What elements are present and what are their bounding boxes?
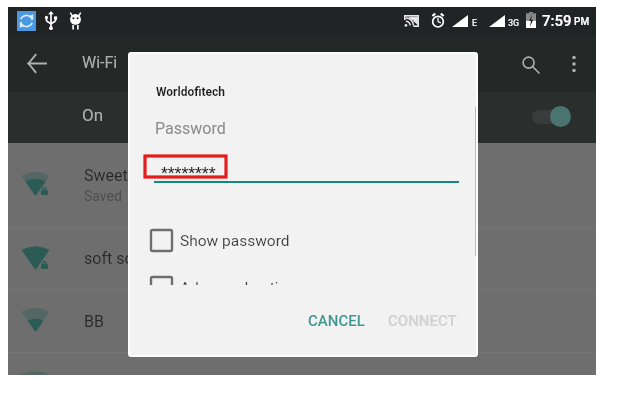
button[interactable]: CANCEL: [296, 303, 377, 339]
staticText: BB: [84, 312, 104, 331]
staticText: PM: [574, 16, 590, 28]
button[interactable]: More options: [556, 46, 592, 82]
staticText: Advanced options: [180, 279, 304, 285]
staticText: Sweet Home: [84, 166, 175, 185]
button[interactable]: CONNECT: [376, 303, 469, 339]
staticText: Worldofitech: [156, 85, 226, 99]
button[interactable]: soft solution: [8, 228, 596, 289]
staticText: soft solution: [84, 249, 174, 268]
button[interactable]: Search: [512, 46, 548, 82]
staticText: CANCEL: [308, 312, 365, 330]
button[interactable]: Show password: [151, 230, 290, 251]
button[interactable]: Navigate up: [19, 45, 55, 81]
button[interactable]: [8, 353, 596, 375]
button[interactable]: Sweet Home: [8, 143, 596, 227]
staticText: Saved: [84, 188, 122, 204]
staticText: CONNECT: [388, 312, 457, 330]
button[interactable]: BB: [8, 290, 596, 352]
staticText: Wi-Fi: [82, 53, 118, 72]
staticText: Password: [155, 119, 226, 138]
button[interactable]: Advanced options: [151, 277, 304, 285]
staticText: Show password: [180, 232, 290, 250]
staticText: On: [82, 105, 104, 125]
staticText: E: [472, 18, 478, 29]
staticText: 7:59: [542, 12, 572, 30]
button[interactable]: On: [8, 92, 596, 143]
staticText: 3G: [508, 18, 520, 29]
staticText: ********: [161, 164, 216, 182]
